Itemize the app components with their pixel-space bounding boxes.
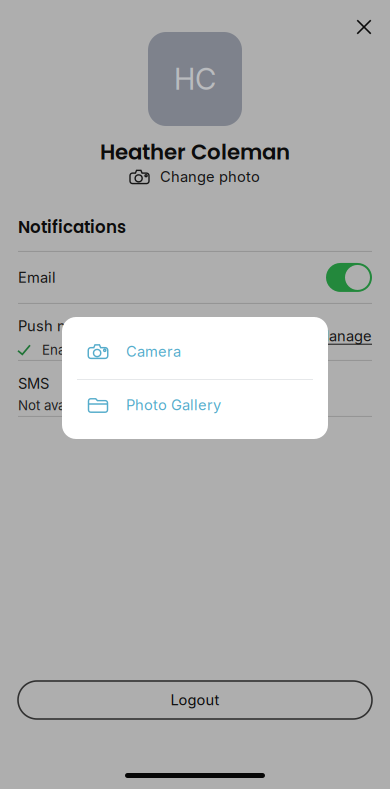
staticText: HC: [174, 61, 216, 97]
button[interactable]: Change photo: [130, 167, 260, 186]
staticText: Heather Coleman: [100, 137, 290, 167]
staticText: Change photo: [160, 168, 260, 186]
button[interactable]: Photo Gallery: [62, 380, 328, 439]
button[interactable]: Logout: [18, 681, 372, 719]
staticText: Email: [18, 269, 56, 286]
staticText: Logout: [170, 691, 219, 709]
staticText: Manage: [316, 327, 372, 345]
staticText: Camera: [126, 342, 181, 360]
staticText: Photo Gallery: [126, 396, 221, 414]
button[interactable]: Camera: [62, 317, 328, 379]
staticText: Notifications: [18, 216, 126, 239]
staticText: Push notifications: [18, 317, 145, 335]
staticText: Not available in your region: [18, 397, 188, 413]
staticText: SMS: [18, 374, 49, 392]
button[interactable]: Manage: [316, 306, 372, 345]
staticText: Enabled: [42, 342, 92, 358]
button[interactable]: Close: [346, 9, 382, 45]
